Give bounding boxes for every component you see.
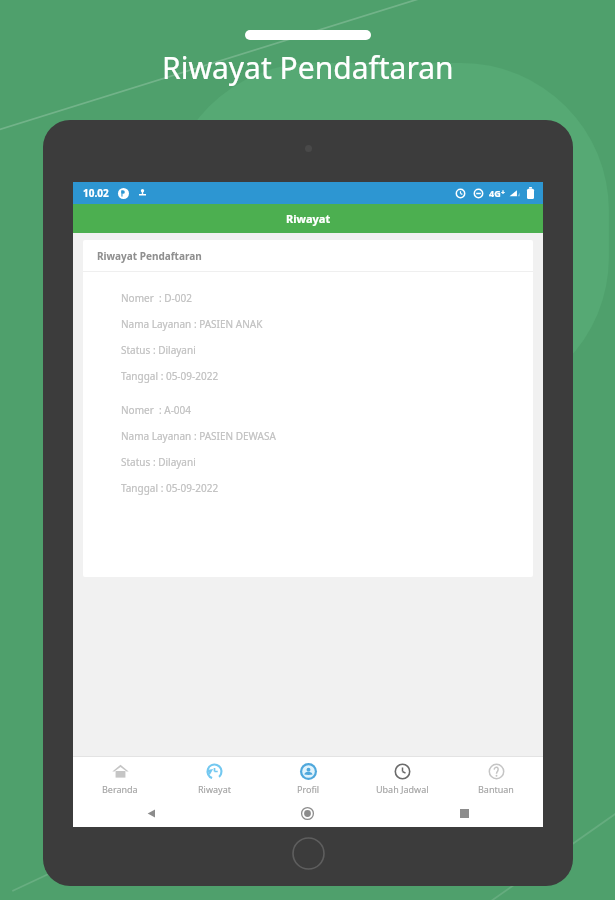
other: Profil — [300, 763, 317, 780]
staticText: Status : Dilayani — [121, 343, 196, 357]
other: Riwayat — [206, 763, 223, 780]
staticText: Status : Dilayani — [121, 455, 196, 469]
staticText: Ubah Jadwal — [376, 783, 429, 795]
staticText: Tanggal : 05-09-2022 — [121, 369, 219, 383]
staticText: Beranda — [102, 783, 138, 795]
button[interactable]: Profil — [261, 757, 355, 800]
button[interactable]: Recent apps — [386, 800, 543, 827]
button[interactable]: Home — [229, 800, 386, 827]
staticText: Riwayat — [286, 211, 331, 226]
staticText: Nomer : A-004 — [121, 403, 192, 417]
other: Beranda — [112, 763, 129, 780]
staticText: Riwayat Pendaftaran — [162, 47, 454, 88]
staticText: Bantuan — [478, 783, 514, 795]
staticText: Tanggal : 05-09-2022 — [121, 481, 219, 495]
staticText: 4G — [489, 187, 501, 199]
staticText: Nama Layanan : PASIEN ANAK — [121, 317, 263, 331]
button[interactable]: Back — [73, 800, 229, 827]
button[interactable]: Beranda — [73, 757, 167, 800]
staticText: Riwayat — [198, 783, 231, 795]
other: Bantuan — [488, 763, 505, 780]
staticText: Nama Layanan : PASIEN DEWASA — [121, 429, 276, 443]
button[interactable]: Ubah Jadwal — [355, 757, 449, 800]
staticText: Riwayat Pendaftaran — [97, 249, 202, 263]
other: Ubah Jadwal — [394, 763, 411, 780]
staticText: Profil — [297, 783, 320, 795]
button[interactable]: Bantuan — [449, 757, 543, 800]
staticText: + — [501, 188, 506, 198]
staticText: 10.02 — [83, 186, 109, 200]
staticText: Nomer : D-002 — [121, 291, 192, 305]
button[interactable]: Riwayat — [167, 757, 261, 800]
